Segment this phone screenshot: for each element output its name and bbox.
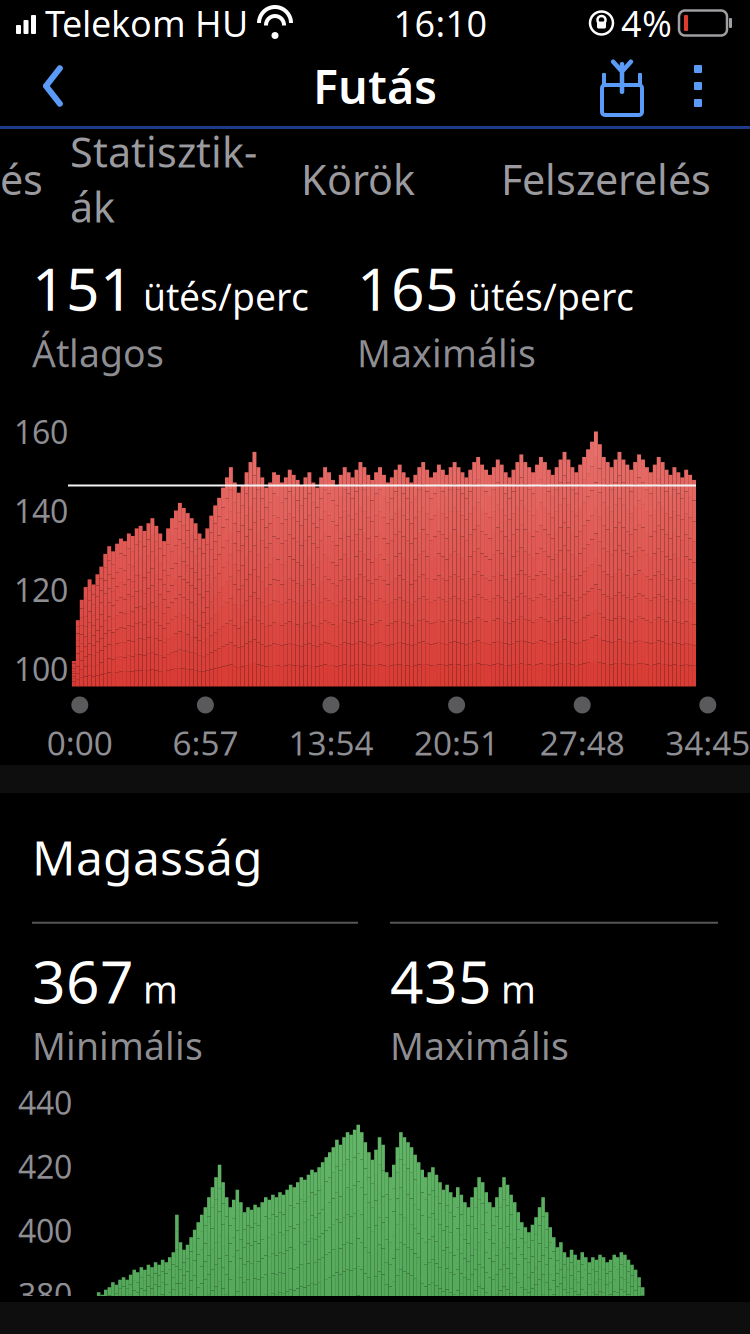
- staticText: és: [0, 152, 43, 206]
- staticText: Telekom HU: [45, 0, 248, 47]
- staticText: m: [501, 964, 536, 1014]
- staticText: 165: [357, 249, 459, 327]
- staticText: Idő (ó:p:mp): [272, 781, 468, 827]
- staticText: Minimális: [32, 1021, 203, 1070]
- staticText: ütés/perc: [468, 271, 634, 321]
- button[interactable]: More options: [662, 46, 734, 126]
- staticText: 4%: [621, 0, 672, 47]
- staticText: 400: [18, 1209, 72, 1251]
- button[interactable]: Statisztikák: [48, 129, 279, 229]
- staticText: 13:54: [288, 720, 373, 765]
- staticText: 440: [18, 1081, 72, 1123]
- staticText: Átlagos: [32, 328, 164, 377]
- staticText: 120: [14, 568, 68, 611]
- button[interactable]: Back: [10, 46, 96, 126]
- staticText: 100: [14, 647, 68, 690]
- staticText: Maximális: [357, 328, 536, 377]
- staticText: 16:10: [393, 0, 487, 47]
- staticText: Körök: [301, 152, 415, 206]
- staticText: m: [143, 964, 178, 1014]
- staticText: 160: [14, 410, 68, 453]
- button[interactable]: Felszerelés: [481, 129, 731, 229]
- staticText: 435: [390, 942, 492, 1020]
- staticText: 140: [14, 489, 68, 532]
- button[interactable]: Share: [582, 46, 662, 126]
- staticText: Magasság: [32, 825, 263, 889]
- staticText: ütés/perc: [143, 271, 309, 321]
- staticText: Statisztikák: [70, 124, 257, 234]
- staticText: 0:00: [47, 720, 113, 765]
- staticText: 27:48: [540, 720, 625, 765]
- staticText: 420: [18, 1145, 72, 1187]
- staticText: 6:57: [172, 720, 238, 765]
- staticText: Futás: [313, 55, 437, 117]
- staticText: 367: [32, 942, 134, 1020]
- staticText: 34:45: [665, 720, 750, 765]
- staticText: 380: [18, 1273, 72, 1315]
- staticText: 151: [32, 249, 134, 327]
- staticText: Felszerelés: [501, 152, 711, 206]
- button[interactable]: és: [0, 129, 48, 229]
- staticText: 20:51: [414, 720, 499, 765]
- staticText: Maximális: [390, 1021, 569, 1070]
- button[interactable]: Körök: [279, 129, 437, 229]
